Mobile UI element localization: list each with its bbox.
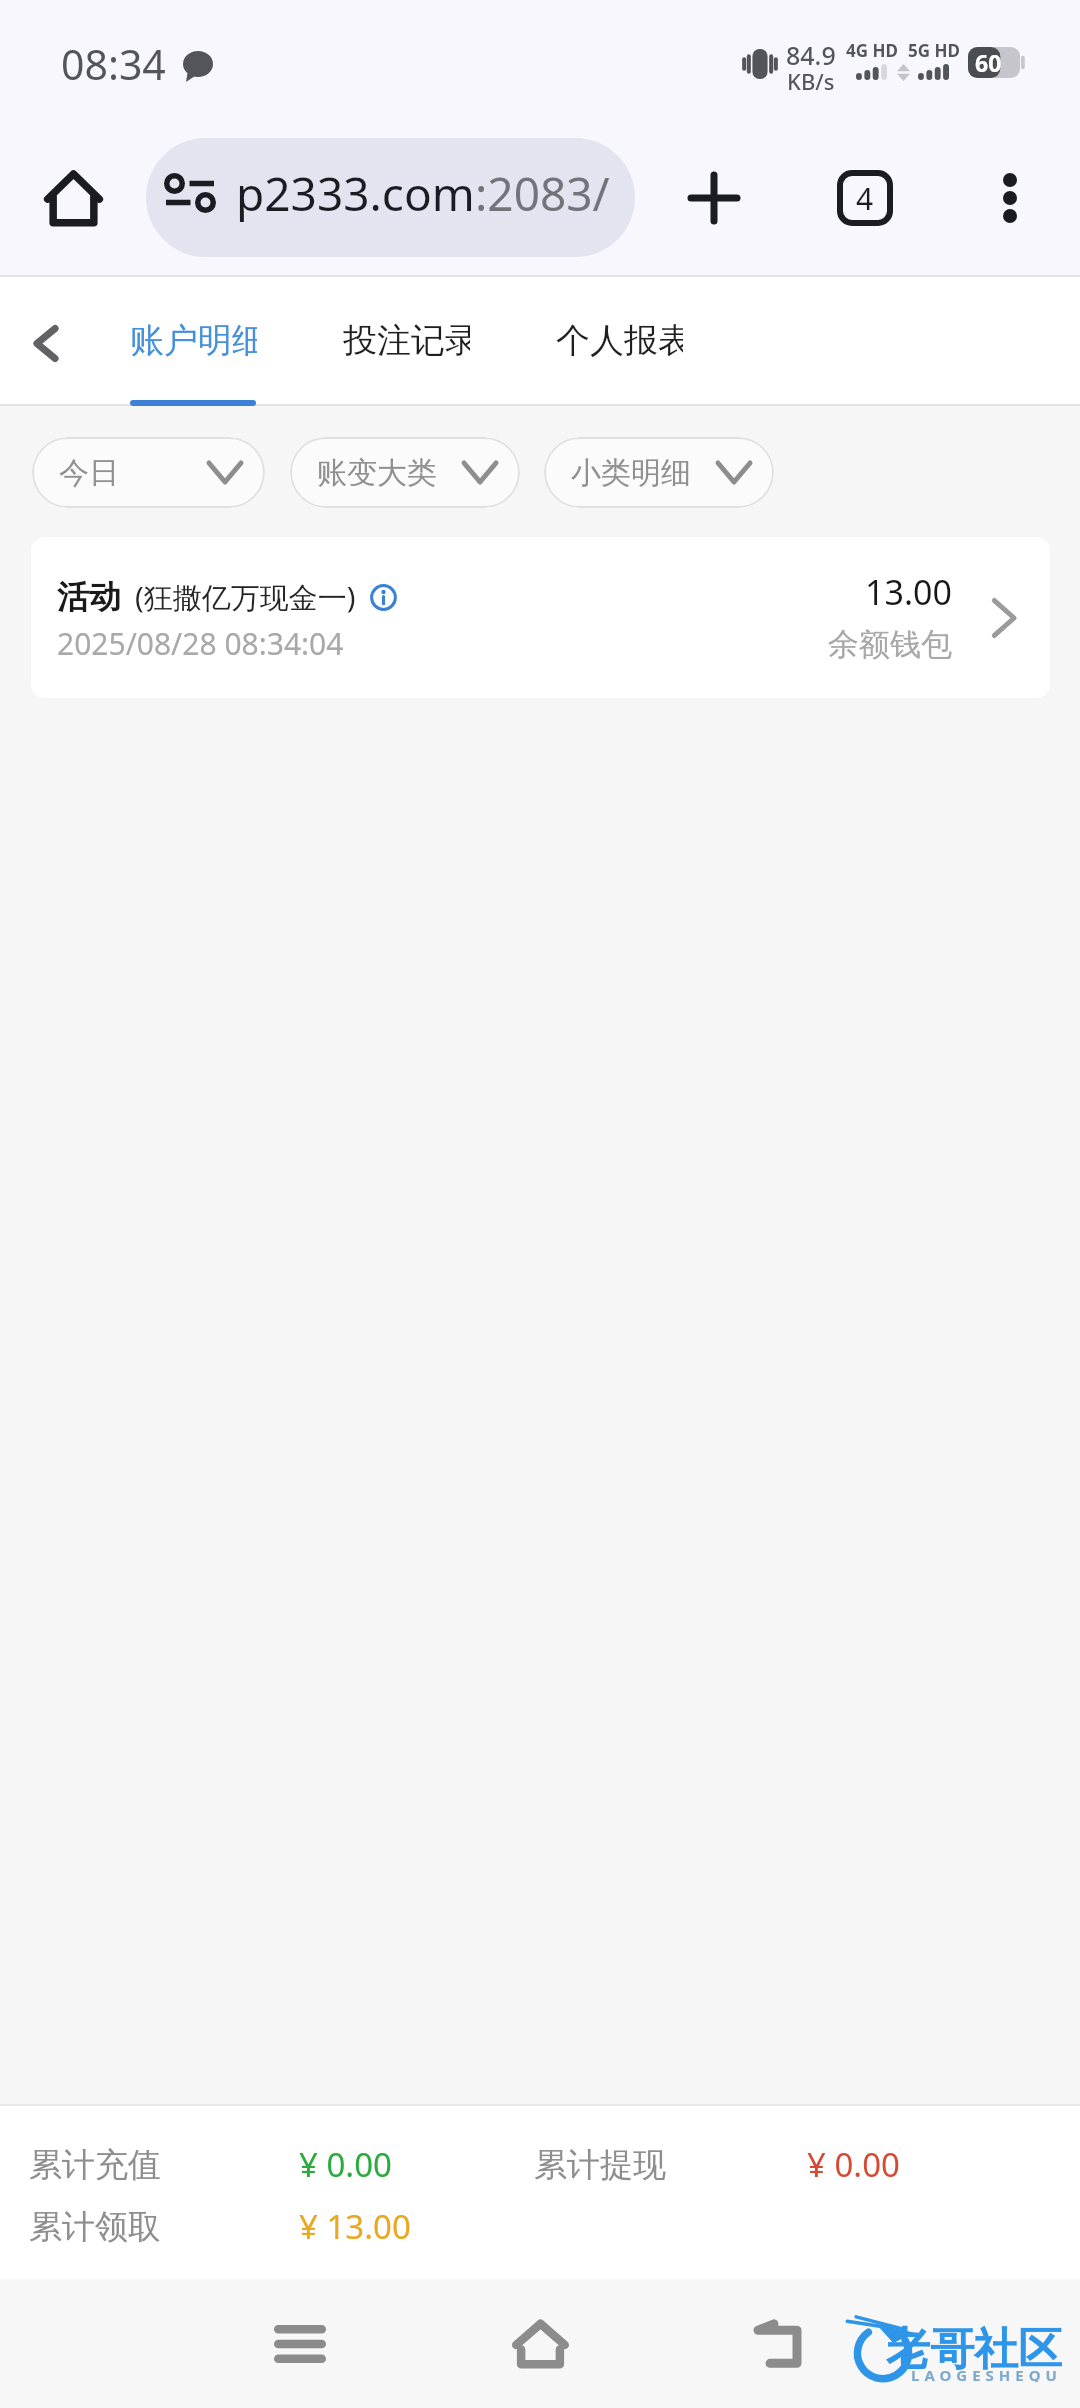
button[interactable]: 账户明细 xyxy=(130,277,257,406)
staticText: 84.9 xyxy=(786,38,836,72)
staticText: 13.00 xyxy=(865,569,952,615)
button[interactable]: Back xyxy=(0,297,92,389)
staticText: 账变大类 xyxy=(317,454,437,492)
button[interactable]: New tab xyxy=(660,144,768,252)
staticText: :2083/ xyxy=(475,162,610,225)
staticText: 余额钱包 xyxy=(828,625,952,664)
button[interactable]: Recents xyxy=(244,2288,356,2400)
button[interactable]: 账变大类 xyxy=(290,437,520,508)
button[interactable]: 活动 xyxy=(31,537,1050,698)
staticText: ¥ 13.00 xyxy=(299,2204,411,2249)
button[interactable]: Home xyxy=(484,2288,596,2400)
button[interactable]: Home xyxy=(16,141,130,255)
button[interactable]: Tabs xyxy=(811,144,919,252)
staticText: ¥ 0.00 xyxy=(299,2142,392,2187)
staticText: (狂撒亿万现金一) xyxy=(135,577,356,617)
button[interactable]: 个人报表 xyxy=(556,277,683,406)
button[interactable]: 小类明细 xyxy=(544,437,774,508)
staticText: 今日 xyxy=(59,454,119,492)
staticText: 08:34 xyxy=(61,36,166,92)
staticText: 账户明细 xyxy=(130,319,257,362)
staticText: 5G HD xyxy=(908,39,960,62)
staticText: 活动 xyxy=(57,577,121,617)
staticText: 累计提现 xyxy=(534,2144,807,2186)
staticText: 投注记录 xyxy=(343,319,470,362)
button[interactable]: Back xyxy=(724,2288,836,2400)
staticText: 4G HD xyxy=(846,39,898,62)
staticText: p2333.com xyxy=(236,162,475,225)
staticText: 累计领取 xyxy=(29,2206,299,2248)
staticText: 60 xyxy=(975,47,1002,78)
staticText: ¥ 0.00 xyxy=(807,2142,900,2187)
staticText: 2025/08/28 08:34:04 xyxy=(57,623,344,664)
staticText: 个人报表 xyxy=(556,319,683,362)
staticText: 4 xyxy=(856,178,874,219)
staticText: 老哥社区 xyxy=(886,2322,1062,2377)
button[interactable]: 投注记录 xyxy=(343,277,470,406)
staticText: KB/s xyxy=(787,66,835,96)
button[interactable]: More options xyxy=(956,144,1064,252)
staticText: 小类明细 xyxy=(571,454,691,492)
staticText: LAOGESHEQU xyxy=(911,2365,1062,2382)
button[interactable]: 今日 xyxy=(32,437,265,508)
button[interactable]: p2333.com xyxy=(146,138,635,257)
staticText: 累计充值 xyxy=(29,2144,299,2186)
